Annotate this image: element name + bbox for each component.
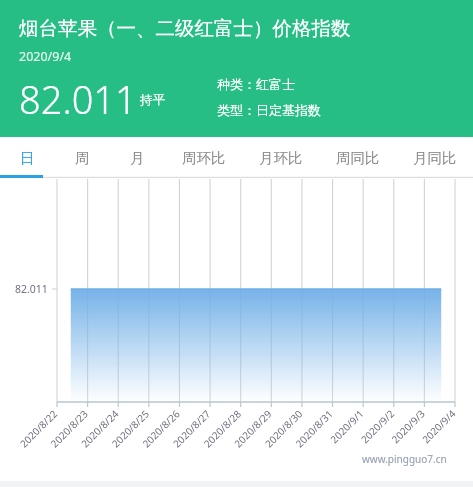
button[interactable]: 周环比 [165,137,242,178]
button[interactable]: 周 [55,137,110,178]
staticText: 烟台苹果（一、二级红富士）价格指数 [19,16,351,41]
button[interactable]: 月同比 [396,137,473,178]
staticText: 周环比 [182,149,226,167]
staticText: 周 [75,149,90,167]
staticText: 持平 [140,92,165,108]
button[interactable]: 月 [110,137,165,178]
staticText: 月环比 [259,149,303,167]
staticText: 月同比 [413,149,457,167]
staticText: 月 [130,149,145,167]
staticText: 种类：红富士 [217,76,295,92]
button[interactable]: 日 [0,137,55,178]
staticText: 周同比 [336,149,380,167]
staticText: 类型：日定基指数 [217,102,321,118]
button[interactable]: 周同比 [319,137,396,178]
staticText: 82.011 [19,73,137,125]
staticText: 日 [20,149,35,167]
staticText: 2020/9/4 [19,48,72,65]
button[interactable]: 月环比 [242,137,319,178]
